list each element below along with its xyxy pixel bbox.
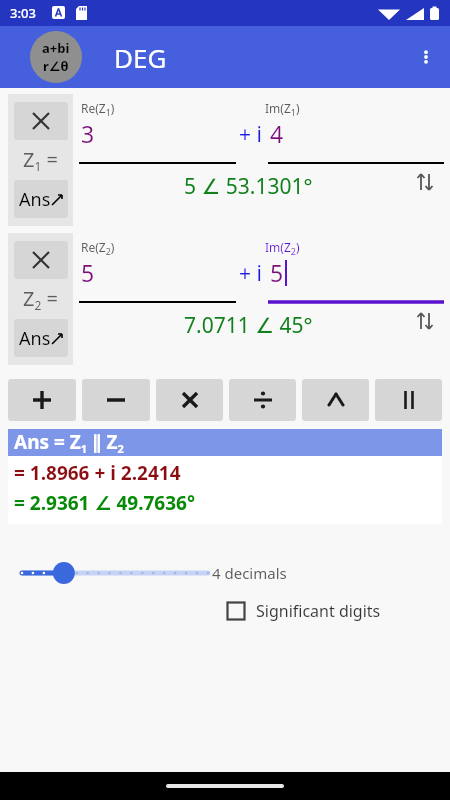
staticText: Ans	[19, 187, 51, 212]
button[interactable]: Toggle notation	[30, 31, 82, 83]
staticText: Z1 =	[23, 146, 58, 175]
staticText: Ans = Z1 ∥ Z2	[14, 429, 124, 456]
staticText: Re(Z1)	[81, 100, 115, 119]
button[interactable]: More options	[402, 33, 450, 81]
staticText: Z2 =	[23, 285, 58, 314]
staticText: Im(Z2)	[265, 239, 300, 258]
staticText: Ans	[19, 326, 51, 351]
staticText: = 2.9361 ∠ 49.7636°	[14, 490, 196, 516]
staticText: 3	[81, 118, 95, 149]
button[interactable]: Ans	[14, 180, 68, 218]
staticText: 7.0711 ∠ 45°	[184, 311, 313, 340]
button[interactable]: divide	[229, 379, 296, 421]
button[interactable]: Ans	[14, 319, 68, 357]
staticText: 5	[270, 257, 284, 288]
staticText: 4	[270, 118, 284, 149]
button[interactable]: power	[302, 379, 369, 421]
button[interactable]: Decimals slider	[18, 556, 212, 590]
staticText: = 1.8966 + i 2.2414	[14, 460, 181, 486]
button[interactable]: Significant digits	[226, 600, 381, 622]
staticText: 4 decimals	[212, 563, 287, 583]
staticText: Re(Z2)	[81, 239, 115, 258]
staticText: Im(Z1)	[265, 100, 300, 119]
staticText: + i	[239, 120, 262, 149]
button[interactable]: times	[156, 379, 223, 421]
staticText: a+bi	[42, 39, 70, 57]
button[interactable]: Swap	[410, 305, 442, 337]
button[interactable]: Clear Z2	[14, 241, 68, 279]
staticText: r∠θ	[43, 57, 69, 75]
button[interactable]: plus	[8, 379, 76, 421]
button[interactable]: parallel	[375, 379, 442, 421]
staticText: Significant digits	[256, 600, 381, 622]
button[interactable]: Swap	[410, 166, 442, 198]
staticText: + i	[239, 259, 262, 288]
button[interactable]: minus	[82, 379, 150, 421]
staticText: 5	[81, 257, 95, 288]
button[interactable]: Ans = Z1 ∥ Z2	[8, 429, 442, 456]
staticText: DEG	[114, 40, 167, 75]
button[interactable]: Clear Z1	[14, 102, 68, 140]
staticText: 5 ∠ 53.1301°	[184, 172, 313, 201]
staticText: 3:03	[10, 4, 36, 22]
